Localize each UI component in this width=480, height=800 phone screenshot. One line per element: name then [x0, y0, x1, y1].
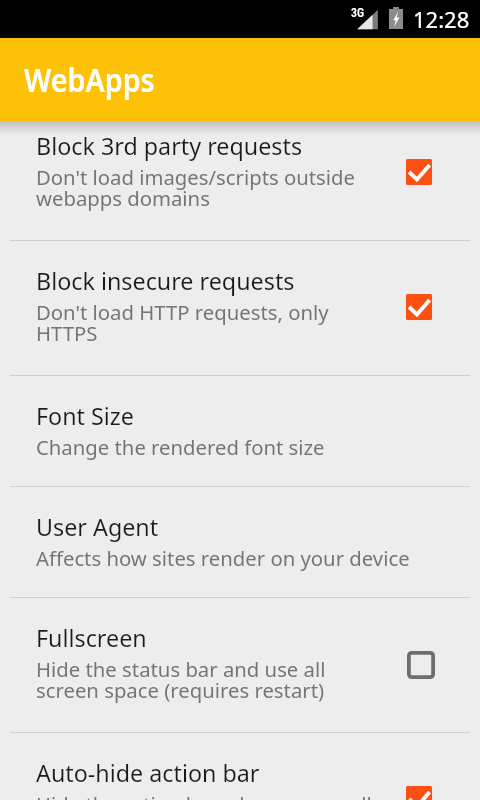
button[interactable]: Auto-hide action bar [376, 768, 464, 800]
staticText: Auto-hide action bar [36, 757, 260, 789]
staticText: Block insecure requests [36, 265, 295, 297]
button[interactable]: Block 3rd party requests [0, 106, 480, 240]
staticText: 12:28 [413, 4, 470, 34]
staticText: Change the rendered font size [36, 433, 325, 461]
button[interactable]: Block insecure requests [0, 241, 480, 375]
button[interactable]: Fullscreen [376, 633, 464, 697]
button[interactable]: Fullscreen [0, 598, 480, 732]
button[interactable]: Font Size [0, 376, 480, 486]
staticText: Fullscreen [36, 622, 147, 654]
staticText: Affects how sites render on your device [36, 544, 410, 572]
staticText: Block 3rd party requests [36, 130, 303, 162]
staticText: 3G [351, 6, 365, 20]
button[interactable]: Auto-hide action bar [0, 733, 480, 800]
staticText: Font Size [36, 400, 134, 432]
staticText: Don't load images/scripts outside webapp… [36, 163, 376, 212]
button[interactable]: User Agent [0, 487, 480, 597]
staticText: User Agent [36, 511, 159, 543]
staticText: Hide the action bar when you scroll all … [36, 790, 376, 800]
button[interactable]: Block 3rd party requests [376, 141, 464, 205]
staticText: WebApps [24, 58, 155, 101]
staticText: Don't load HTTP requests, only HTTPS [36, 298, 376, 347]
staticText: Hide the status bar and use all screen s… [36, 655, 376, 704]
button[interactable]: Block insecure requests [376, 276, 464, 340]
